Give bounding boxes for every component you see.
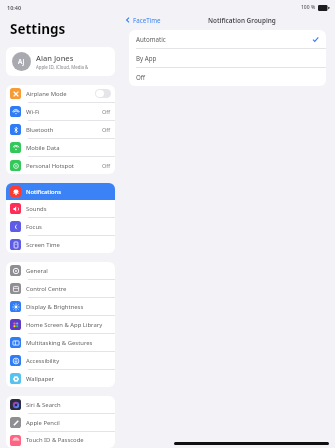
staticText: Sounds (26, 205, 111, 213)
button[interactable]: Apple Pencil (6, 414, 115, 431)
staticText: Apple ID, iCloud, Media & Purchases (36, 64, 109, 70)
staticText: Touch ID & Passcode (26, 436, 111, 444)
staticText: By App (136, 54, 319, 62)
staticText: Off (102, 162, 111, 170)
staticText: Control Centre (26, 285, 111, 293)
staticText: Off (136, 73, 319, 81)
staticText: AJ (18, 57, 25, 66)
staticText: Multitasking & Gestures (26, 339, 111, 347)
staticText: Mobile Data (26, 144, 111, 152)
staticText: Notifications (26, 188, 111, 196)
button[interactable]: Off (129, 68, 326, 86)
button[interactable]: Display & Brightness (6, 298, 115, 315)
staticText: Settings (10, 20, 66, 38)
staticText: 100 % (301, 4, 316, 11)
staticText: Siri & Search (26, 401, 111, 409)
staticText: Accessibility (26, 357, 111, 365)
button[interactable]: FaceTime (121, 16, 165, 24)
staticText: Personal Hotspot (26, 162, 102, 170)
staticText: Display & Brightness (26, 303, 111, 311)
staticText: Automatic (136, 35, 312, 43)
staticText: 10:40 (7, 4, 22, 11)
button[interactable]: Control Centre (6, 280, 115, 297)
button[interactable]: Wallpaper (6, 370, 115, 387)
button[interactable]: Home Screen & App Library (6, 316, 115, 333)
staticText: FaceTime (133, 16, 161, 24)
button[interactable]: Automatic (129, 30, 326, 48)
staticText: Apple Pencil (26, 419, 111, 427)
staticText: Focus (26, 223, 111, 231)
button[interactable]: Bluetooth (6, 121, 115, 138)
button[interactable]: AJ (6, 47, 115, 76)
button[interactable]: Airplane Mode toggle (95, 89, 111, 98)
other: Selected (312, 36, 319, 43)
button[interactable]: Focus (6, 218, 115, 235)
staticText: Screen Time (26, 241, 111, 249)
button[interactable]: Notifications (6, 183, 115, 200)
button[interactable]: Touch ID & Passcode (6, 432, 115, 448)
staticText: General (26, 267, 111, 275)
staticText: Bluetooth (26, 126, 102, 134)
button[interactable]: Screen Time (6, 236, 115, 253)
button[interactable]: Siri & Search (6, 396, 115, 413)
button[interactable]: By App (129, 49, 326, 67)
staticText: Airplane Mode (26, 90, 95, 98)
staticText: Off (102, 126, 111, 134)
staticText: Off (102, 108, 111, 116)
staticText: Wallpaper (26, 375, 111, 383)
button[interactable]: Airplane Mode (6, 85, 115, 102)
button[interactable]: Mobile Data (6, 139, 115, 156)
staticText: Alan Jones (36, 53, 74, 63)
button[interactable]: General (6, 262, 115, 279)
button[interactable]: Wi-Fi (6, 103, 115, 120)
staticText: Home Screen & App Library (26, 321, 111, 329)
button[interactable]: Accessibility (6, 352, 115, 369)
button[interactable]: Multitasking & Gestures (6, 334, 115, 351)
staticText: Notification Grouping (208, 16, 276, 25)
staticText: Wi-Fi (26, 108, 102, 116)
button[interactable]: Sounds (6, 200, 115, 217)
button[interactable]: Personal Hotspot (6, 157, 115, 174)
